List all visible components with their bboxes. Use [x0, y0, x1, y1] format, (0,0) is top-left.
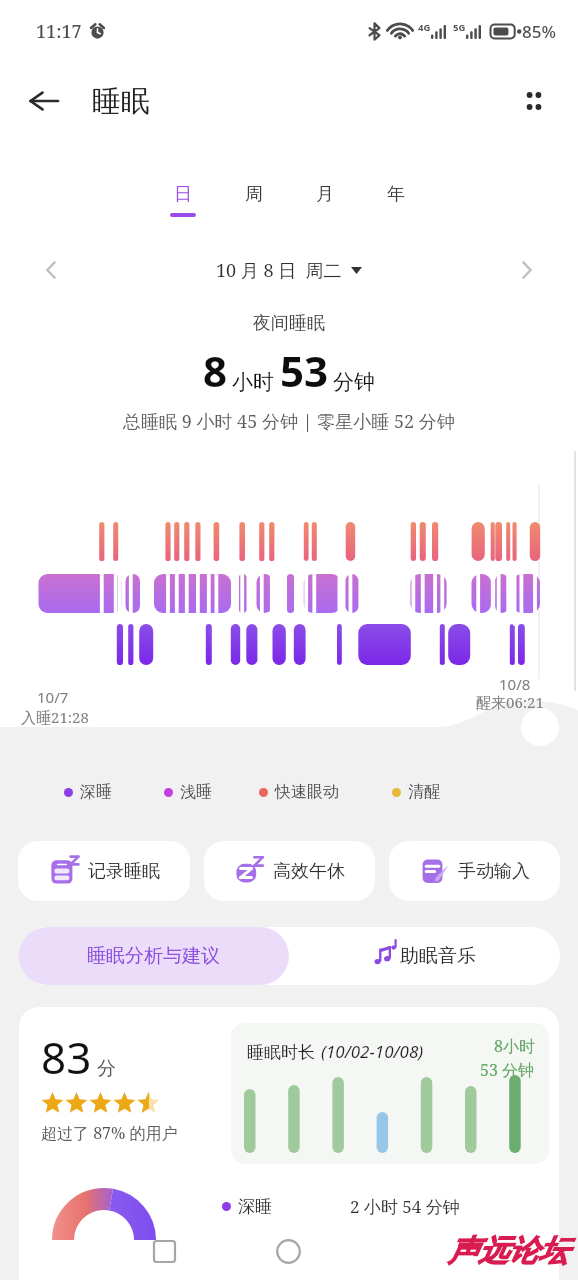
staticText: 浅睡	[180, 782, 212, 802]
staticText: 分钟	[333, 369, 375, 395]
button[interactable]: Previous day	[30, 249, 72, 291]
button[interactable]: Next day	[506, 249, 548, 291]
staticText: 睡眠时长	[247, 1042, 315, 1063]
button[interactable]: Recents	[142, 1229, 186, 1273]
button[interactable]: 手动输入	[389, 841, 560, 901]
staticText: 助眠音乐	[400, 944, 476, 968]
staticText: 11:17	[36, 19, 82, 44]
staticText: 10/7	[37, 687, 69, 707]
staticText: 2 小时 54 分钟	[350, 1195, 460, 1218]
button[interactable]: 年	[360, 140, 431, 228]
button[interactable]: 月	[289, 140, 360, 228]
button[interactable]: 高效午休	[204, 841, 375, 901]
button[interactable]: 记录睡眠	[18, 841, 190, 901]
staticText: 超过了 87% 的用户	[41, 1122, 178, 1144]
staticText: 入睡21:28	[21, 707, 89, 727]
staticText: 深睡	[238, 1196, 272, 1217]
staticText: 手动输入	[458, 860, 530, 883]
staticText: 睡眠分析与建议	[87, 944, 220, 968]
button[interactable]: Home	[266, 1229, 310, 1273]
staticText: 5G	[453, 21, 466, 34]
staticText: 分	[97, 1057, 116, 1081]
staticText: 53 分钟	[480, 1059, 535, 1081]
staticText: 声远论坛	[448, 1232, 568, 1270]
staticText: 清醒	[408, 782, 440, 802]
staticText: 小时	[232, 369, 274, 395]
button[interactable]: 深睡	[64, 782, 112, 802]
staticText: 总睡眠 9 小时 45 分钟 | 零星小睡 52 分钟	[123, 409, 455, 434]
button[interactable]: 睡眠分析与建议	[18, 927, 289, 985]
button[interactable]: 清醒	[392, 782, 440, 802]
staticText: 8小时	[494, 1035, 535, 1057]
staticText: 夜间睡眠	[253, 312, 325, 335]
staticText: (10/02-10/08)	[321, 1040, 424, 1063]
staticText: 深睡	[80, 782, 112, 802]
staticText: 4G	[418, 21, 431, 34]
button[interactable]: 助眠音乐	[289, 927, 560, 985]
staticText: 周	[245, 183, 263, 206]
button[interactable]: 浅睡	[164, 782, 212, 802]
staticText: 日	[174, 183, 192, 206]
staticText: 月	[316, 183, 334, 206]
staticText: 记录睡眠	[88, 860, 160, 883]
staticText: 高效午休	[273, 860, 345, 883]
staticText: 快速眼动	[275, 782, 339, 802]
button[interactable]: 日	[147, 140, 218, 228]
button[interactable]: 快速眼动	[259, 782, 339, 802]
staticText: 10 月 8 日 周二	[216, 258, 342, 283]
staticText: 8	[203, 342, 228, 399]
button[interactable]: Back	[20, 77, 68, 125]
staticText: 10/8	[499, 674, 531, 694]
staticText: 醒来06:21	[476, 692, 544, 712]
staticText: 83	[41, 1027, 92, 1087]
staticText: 53	[280, 342, 329, 399]
staticText: 年	[387, 183, 405, 206]
staticText: 睡眠	[92, 83, 150, 120]
staticText: 85%	[522, 20, 556, 43]
button[interactable]: More options	[510, 77, 558, 125]
button[interactable]: 周	[218, 140, 289, 228]
